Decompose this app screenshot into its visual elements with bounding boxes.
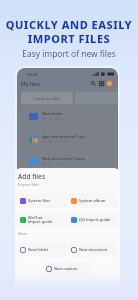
staticText: Mar 10 · 12.5 MB <box>42 140 68 144</box>
button[interactable]: QQ import guide <box>68 212 118 227</box>
staticText: Compress files <box>33 96 61 101</box>
staticText: New folder <box>42 111 64 116</box>
staticText: New document <box>79 247 108 252</box>
button[interactable]: Compress files <box>21 92 73 104</box>
staticText: QQ import guide <box>79 217 111 222</box>
staticText: App introduction/1.zip <box>42 134 85 139</box>
button[interactable]: Profile <box>106 80 113 87</box>
staticText: QUICKLY AND EASILY IMPORT FILES <box>0 17 138 46</box>
staticText: System album <box>79 198 106 203</box>
staticText: New folder <box>28 247 49 252</box>
button[interactable]: Grid view <box>98 80 105 87</box>
button[interactable]: New capture <box>43 261 93 276</box>
staticText: Easy import of new files <box>0 48 138 59</box>
button[interactable]: System album <box>68 193 118 208</box>
staticText: Mar 09 · 1.2 MB <box>42 162 66 166</box>
staticText: More <box>18 231 28 236</box>
staticText: Mar 12 · 8 items <box>42 117 67 121</box>
button[interactable]: New document/1.docx <box>29 154 113 168</box>
button[interactable]: WeChat import guide <box>17 212 67 227</box>
staticText: New capture <box>54 266 78 271</box>
button[interactable]: System files <box>17 193 67 208</box>
staticText: New document/1.docx <box>42 156 86 161</box>
button[interactable]: New folder <box>17 242 67 257</box>
staticText: Import files <box>18 182 39 187</box>
button[interactable]: New document <box>68 242 118 257</box>
button[interactable]: New folder <box>29 109 113 123</box>
staticText: System files <box>28 198 51 203</box>
staticText: 09:36 <box>27 72 38 78</box>
staticText: Add files <box>18 172 46 181</box>
button[interactable]: Search <box>90 80 97 87</box>
button[interactable]: App introduction/1.zip <box>29 132 113 146</box>
staticText: WeChat import guide <box>28 215 53 225</box>
staticText: My files <box>21 80 40 87</box>
